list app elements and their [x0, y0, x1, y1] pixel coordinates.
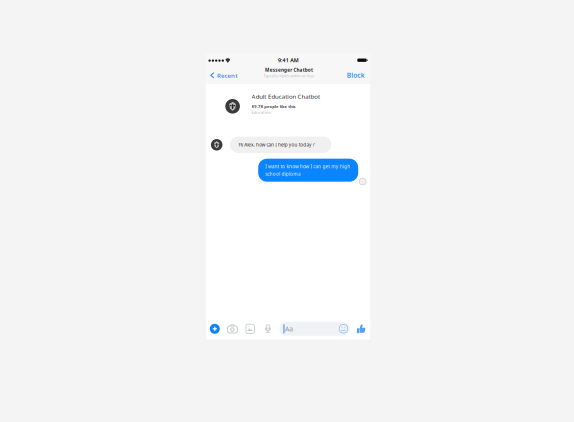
staticText: I want to know how I can get my high sch… — [242, 130, 412, 157]
staticText: Hi Alex, how can I help you today ? — [189, 87, 341, 99]
